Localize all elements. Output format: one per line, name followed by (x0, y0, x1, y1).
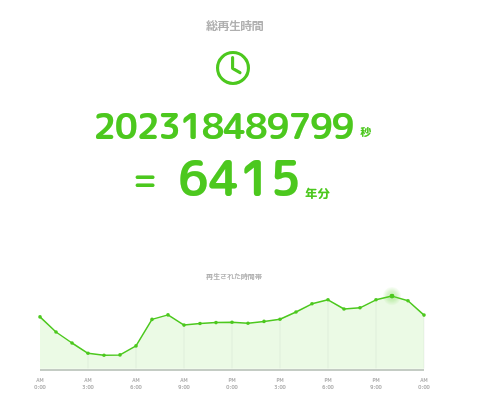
button[interactable]: Total play time (216, 51, 250, 85)
staticText: 6415 (178, 144, 301, 211)
staticText: 6:00 (130, 384, 142, 391)
staticText: AM (84, 377, 92, 384)
staticText: 総再生時間 (206, 17, 264, 34)
staticText: 0:00 (34, 384, 46, 391)
staticText: 9:00 (178, 384, 190, 391)
staticText: 秒 (360, 124, 371, 139)
staticText: 3:00 (274, 384, 286, 391)
staticText: PM (276, 377, 284, 384)
staticText: 0:00 (418, 384, 430, 391)
staticText: PM (372, 377, 380, 384)
staticText: 202318489799 (93, 100, 354, 150)
staticText: 6:00 (322, 384, 334, 391)
staticText: AM (180, 377, 188, 384)
staticText: 0:00 (226, 384, 238, 391)
staticText: 再生された時間帯 (206, 271, 262, 281)
staticText: PM (228, 377, 236, 384)
staticText: PM (324, 377, 332, 384)
staticText: AM (36, 377, 44, 384)
staticText: AM (132, 377, 140, 384)
staticText: 9:00 (370, 384, 382, 391)
button[interactable] (0, 8, 490, 228)
staticText: 3:00 (82, 384, 94, 391)
staticText: AM (420, 377, 428, 384)
button[interactable]: Playback time of day chart (0, 262, 490, 394)
staticText: = (133, 157, 158, 202)
staticText: 年分 (305, 185, 331, 202)
